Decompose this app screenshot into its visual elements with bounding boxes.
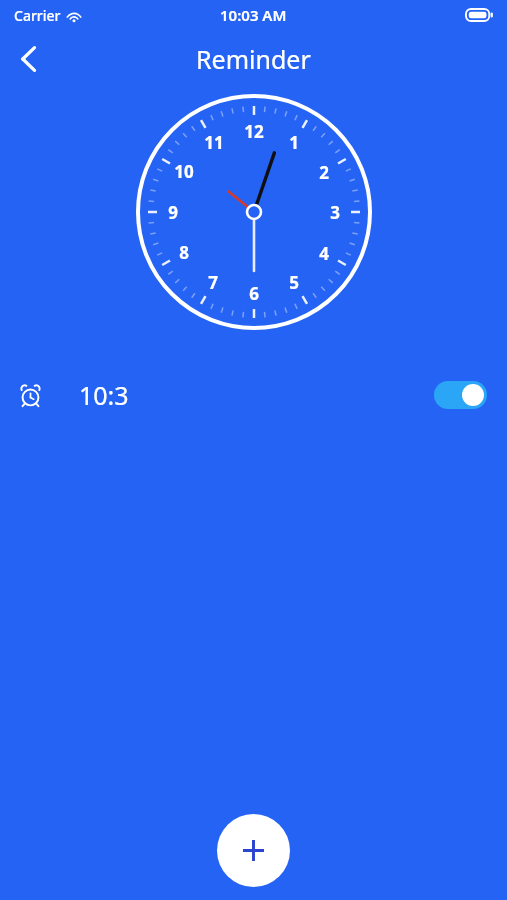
button[interactable]: Back — [5, 36, 51, 82]
button[interactable]: Alarm — [0, 366, 507, 424]
staticText: 2 — [319, 161, 329, 184]
staticText: 4 — [319, 242, 329, 265]
staticText: 3 — [330, 201, 340, 224]
staticText: 12 — [244, 120, 264, 143]
staticText: 5 — [289, 271, 299, 294]
staticText: Carrier — [14, 6, 61, 25]
staticText: 10:3 — [79, 378, 129, 412]
staticText: 10:03 AM — [220, 5, 287, 25]
staticText: 7 — [208, 271, 218, 294]
other: Alarm — [19, 384, 42, 407]
button[interactable]: Add reminder — [217, 814, 290, 887]
staticText: Reminder — [196, 42, 311, 76]
staticText: 10 — [174, 160, 194, 183]
staticText: 8 — [179, 241, 189, 264]
staticText: 1 — [289, 131, 299, 154]
button[interactable]: Toggle alarm — [434, 381, 487, 409]
staticText: 9 — [168, 201, 178, 224]
staticText: 6 — [249, 282, 259, 305]
staticText: 11 — [204, 131, 224, 154]
